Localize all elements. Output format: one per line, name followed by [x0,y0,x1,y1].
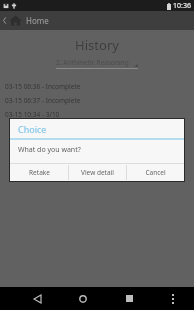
button[interactable]: Home [71,287,95,310]
other: Back [2,16,7,25]
button[interactable]: Back [25,287,49,310]
staticText: 2. Arithmetic Reasoning [56,58,133,67]
button[interactable]: Back [0,11,194,30]
staticText: What do you want? [18,145,81,155]
button[interactable]: View detail [69,164,126,181]
button[interactable]: Cancel [127,164,184,181]
button[interactable]: More options [163,289,183,309]
staticText: Home [26,15,49,26]
staticText: History [0,36,194,54]
button[interactable]: 2. Arithmetic Reasoning [56,58,138,69]
button[interactable]: Retake [10,164,68,181]
staticText: 10:36 [173,1,191,11]
staticText: 03-15 06:37 - Incomplete [5,96,81,105]
staticText: 03-15 06:36 - Incomplete [5,82,81,91]
button[interactable]: 03-15 06:37 - Incomplete [0,93,194,107]
button[interactable]: 03-15 10:34 - 3/10 [0,107,194,121]
staticText: View detail [81,168,114,177]
other: Home [9,14,22,27]
staticText: Cancel [145,168,166,177]
button[interactable]: Recent apps [117,287,141,310]
button[interactable]: 03-15 06:36 - Incomplete [0,79,194,93]
staticText: Choice [18,123,47,135]
staticText: 03-15 10:34 - 3/10 [5,110,60,119]
staticText: Retake [29,168,50,177]
